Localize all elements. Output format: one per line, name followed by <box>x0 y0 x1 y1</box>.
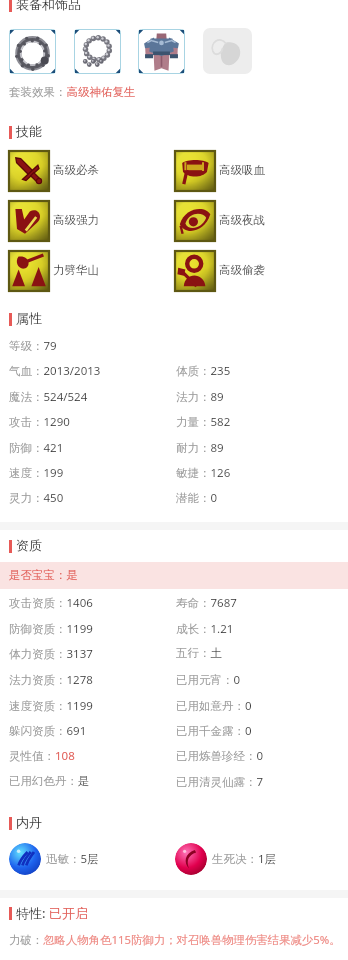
button[interactable]: 高级强力 <box>9 201 49 241</box>
staticText: 魔法：524/524 <box>9 389 88 405</box>
staticText: 高级偷袭 <box>219 263 265 277</box>
button[interactable]: 高级夜战 <box>175 201 215 241</box>
staticText: 高级必杀 <box>53 163 99 177</box>
button[interactable]: 高级必杀 <box>9 151 49 191</box>
staticText: 防御：421 <box>9 440 64 456</box>
staticText: 套装效果：高级神佑复生 <box>9 85 136 99</box>
staticText: 力破：忽略人物角色115防御力；对召唤兽物理伤害结果减少5%。 <box>9 932 341 948</box>
button[interactable]: 高级吸血 <box>175 151 215 191</box>
staticText: 成长：1.21 <box>176 621 234 637</box>
staticText: 高级吸血 <box>219 163 265 177</box>
staticText: 敏捷：126 <box>176 465 231 481</box>
staticText: 迅敏：5层 <box>46 851 99 867</box>
button[interactable]: 装备槽位 <box>138 29 185 74</box>
staticText: 五行：土 <box>176 646 222 660</box>
staticText: 生死决：1层 <box>212 851 277 867</box>
staticText: 属性 <box>16 310 42 326</box>
staticText: 耐力：89 <box>176 440 224 456</box>
staticText: 攻击资质：1406 <box>9 595 93 611</box>
staticText: 潜能：0 <box>176 490 218 506</box>
staticText: 躲闪资质：691 <box>9 723 87 739</box>
button[interactable]: 装备槽位 <box>9 29 56 74</box>
staticText: 技能 <box>16 123 42 139</box>
button[interactable]: 空装备位 <box>203 28 252 74</box>
staticText: 灵力：450 <box>9 490 64 506</box>
staticText: 灵性值：108 <box>9 748 75 764</box>
button[interactable]: 迅敏内丹 <box>9 843 41 875</box>
staticText: 防御资质：1199 <box>9 621 93 637</box>
staticText: 等级：79 <box>9 338 57 354</box>
button[interactable]: 生死决内丹 <box>175 843 207 875</box>
staticText: 力量：582 <box>176 414 231 430</box>
staticText: 是否宝宝：是 <box>9 568 78 582</box>
staticText: 已用幻色丹：是 <box>9 774 90 788</box>
staticText: 已用元宵：0 <box>176 672 241 688</box>
staticText: 已用炼兽珍经：0 <box>176 748 264 764</box>
staticText: 力劈华山 <box>53 263 99 277</box>
staticText: 已用千金露：0 <box>176 723 252 739</box>
staticText: 攻击：1290 <box>9 414 70 430</box>
button[interactable]: 高级偷袭 <box>175 251 215 291</box>
staticText: 速度资质：1199 <box>9 698 93 714</box>
staticText: 寿命：7687 <box>176 595 237 611</box>
staticText: 体质：235 <box>176 363 231 379</box>
button[interactable]: 力劈华山 <box>9 251 49 291</box>
button[interactable]: 装备槽位 <box>74 29 121 74</box>
staticText: 法力：89 <box>176 389 224 405</box>
staticText: 气血：2013/2013 <box>9 363 101 379</box>
staticText: 速度：199 <box>9 465 64 481</box>
staticText: 体力资质：3137 <box>9 646 93 662</box>
staticText: 已用如意丹：0 <box>176 698 252 714</box>
staticText: 高级强力 <box>53 213 99 227</box>
staticText: 已用清灵仙露：7 <box>176 774 264 790</box>
staticText: 装备和饰品 <box>16 0 81 12</box>
staticText: 法力资质：1278 <box>9 672 93 688</box>
staticText: 高级夜战 <box>219 213 265 227</box>
staticText: 资质 <box>16 537 42 553</box>
staticText: 特性: 已开启 <box>16 904 88 922</box>
staticText: 内丹 <box>16 814 42 830</box>
